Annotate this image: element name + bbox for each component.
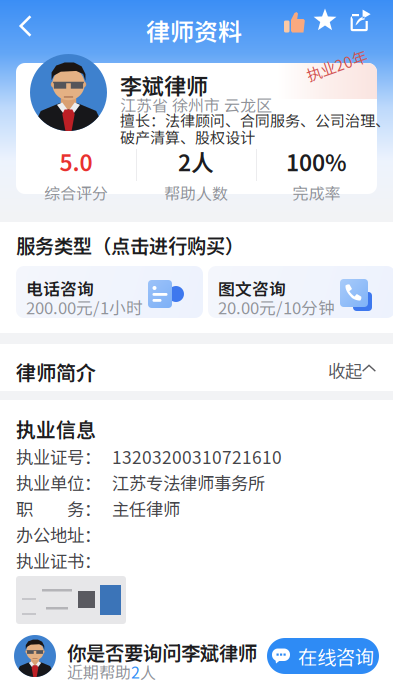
staticText: 服务类型（点击进行购买）	[16, 231, 244, 259]
staticText: 200.00元/1小时	[26, 295, 143, 319]
staticText: 13203200310721610	[112, 444, 282, 469]
staticText: 图文咨询	[218, 276, 286, 300]
staticText: 执业证号：	[16, 444, 101, 469]
button[interactable]: Back	[4, 2, 48, 46]
staticText: 综合评分	[44, 181, 108, 204]
staticText: 江苏专法律师事务所	[112, 470, 265, 495]
button[interactable]: Favorite	[310, 5, 342, 37]
staticText: 执业证书：	[16, 548, 101, 573]
button[interactable]: 图文咨询	[208, 266, 393, 318]
staticText: 执业单位：	[16, 470, 101, 495]
staticText: 2人	[178, 145, 214, 178]
button[interactable]: 在线咨询	[267, 638, 379, 674]
staticText: 执业信息	[16, 414, 96, 443]
button[interactable]: 电话咨询	[16, 266, 203, 318]
staticText: 电话咨询	[26, 276, 94, 300]
staticText: 100%	[286, 145, 347, 178]
staticText: 办公地址：	[16, 522, 101, 547]
staticText: 破产清算、股权设计	[120, 126, 255, 148]
staticText: 收起	[328, 358, 362, 383]
staticText: 执业20年	[305, 54, 368, 76]
staticText: 帮助人数	[164, 181, 228, 204]
staticText: 主任律师	[112, 496, 180, 521]
button[interactable]: 律师简介	[0, 344, 393, 391]
staticText: 李斌律师	[120, 69, 208, 101]
staticText: 你是否要询问李斌律师	[67, 638, 257, 666]
staticText: 2	[131, 660, 140, 683]
staticText: 人	[140, 660, 156, 683]
staticText: 律师资料	[146, 13, 242, 48]
staticText: 在线咨询	[298, 642, 374, 670]
staticText: 20.00元/10分钟	[218, 295, 335, 319]
button[interactable]: Share	[344, 5, 376, 37]
staticText: 近期帮助	[67, 660, 131, 683]
staticText: 5.0	[59, 145, 92, 178]
staticText: 完成率	[292, 181, 340, 204]
staticText: 职 务：	[16, 496, 101, 521]
staticText: 擅长：法律顾问、合同服务、公司治理、	[120, 109, 390, 131]
staticText: 律师简介	[16, 357, 96, 386]
button[interactable]: Like	[279, 6, 311, 38]
staticText: 江苏省 徐州市 云龙区	[120, 93, 272, 116]
